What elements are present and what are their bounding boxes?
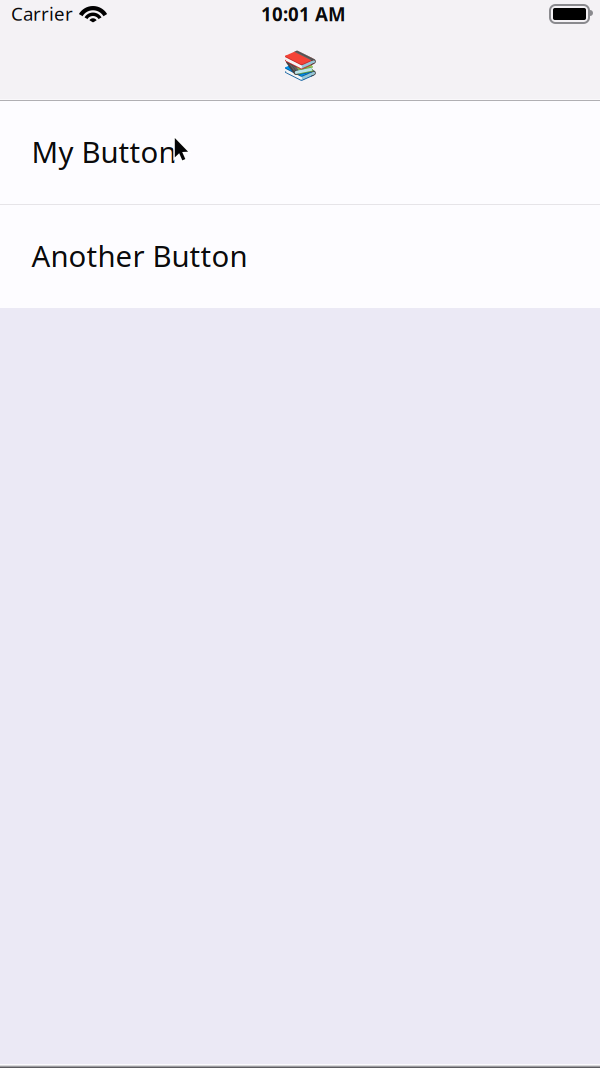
staticText: 📚 [282,49,317,81]
staticText: My Button [31,132,176,171]
staticText: 10:01 AM [261,2,346,26]
button[interactable]: My Button [0,101,600,204]
staticText: Carrier [11,1,73,26]
staticText: Another Button [31,236,247,275]
button[interactable]: Another Button [0,205,600,308]
